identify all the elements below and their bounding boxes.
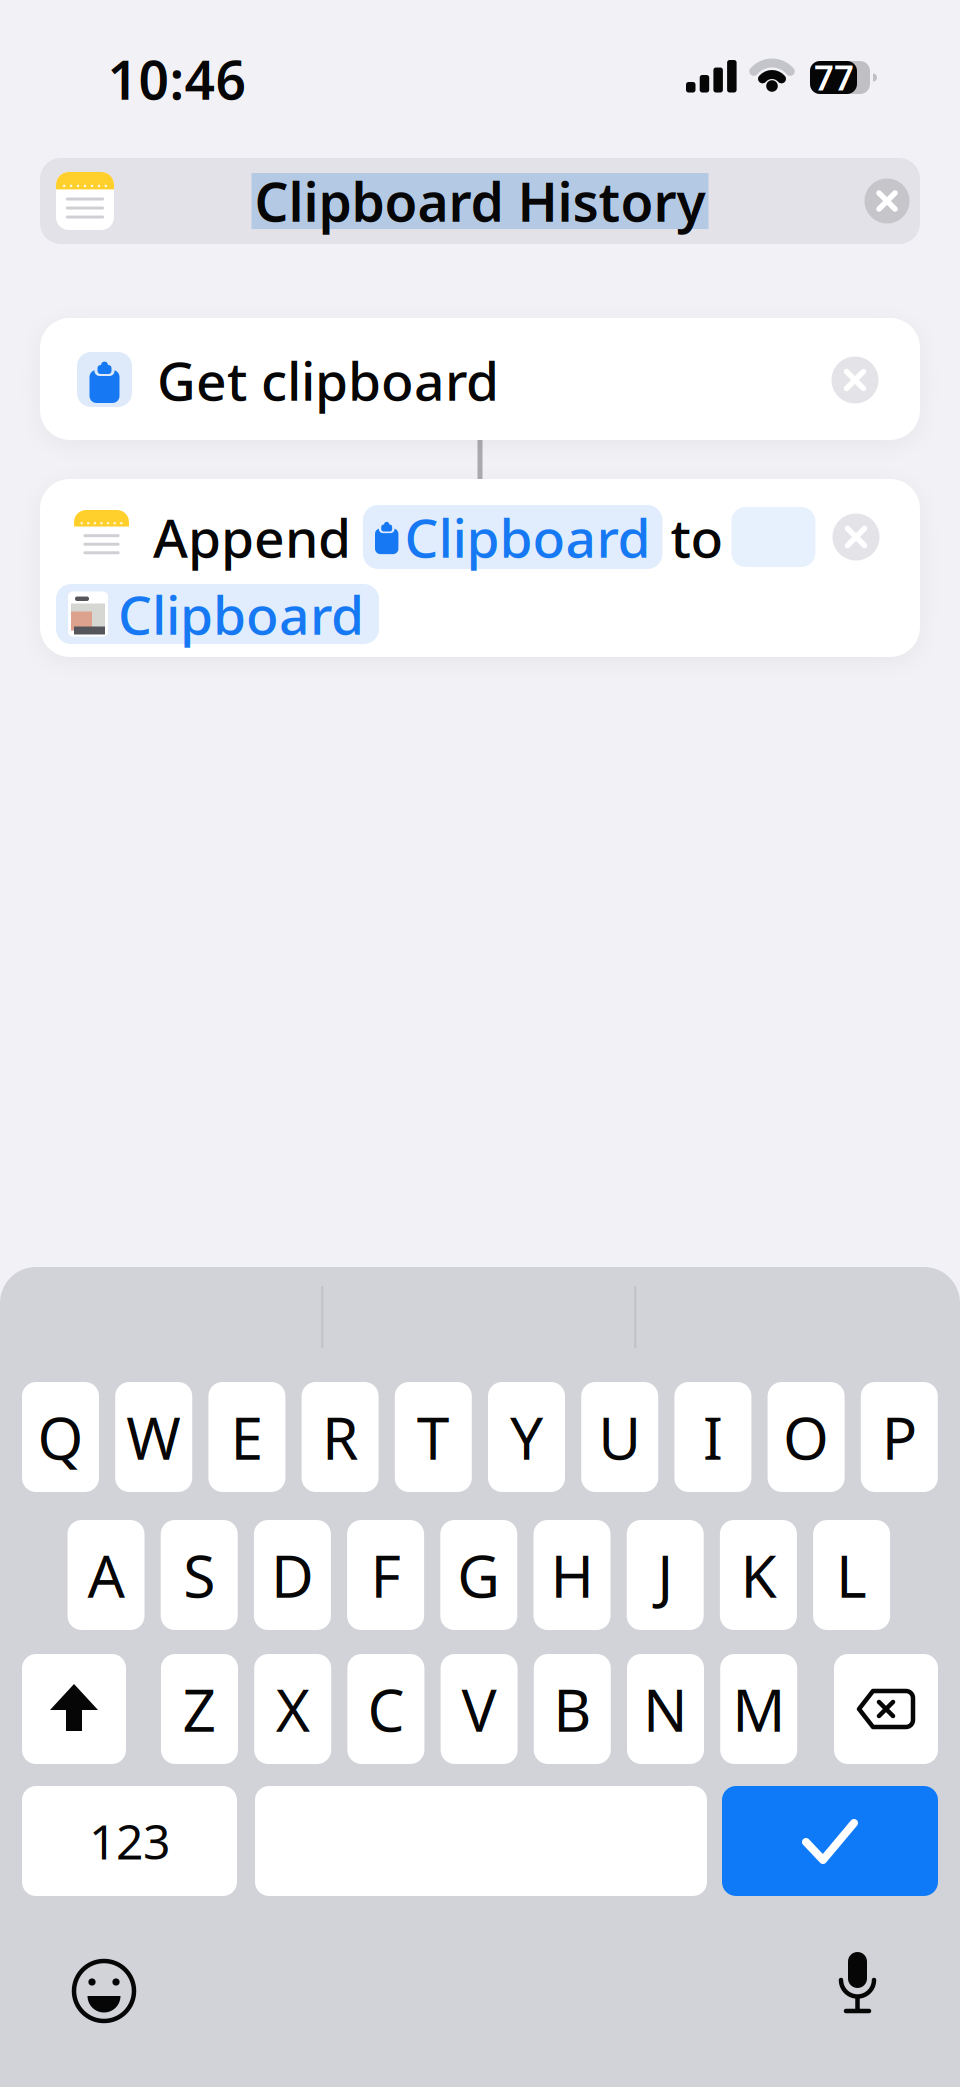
button[interactable]: V xyxy=(441,1654,518,1764)
staticText: R xyxy=(322,1398,358,1476)
staticText: Get clipboard xyxy=(157,345,499,415)
button[interactable]: M xyxy=(720,1654,797,1764)
staticText: E xyxy=(230,1398,263,1476)
button[interactable]: U xyxy=(581,1382,658,1492)
staticText: Q xyxy=(37,1398,83,1476)
staticText: 77 xyxy=(814,54,854,100)
staticText: Z xyxy=(182,1670,216,1748)
staticText: D xyxy=(271,1536,314,1614)
staticText: Clipboard xyxy=(404,502,650,572)
staticText: Clipboard xyxy=(118,579,364,649)
button[interactable]: Dictation xyxy=(820,1950,896,2026)
staticText: B xyxy=(553,1670,591,1748)
button[interactable]: H xyxy=(533,1520,610,1630)
button[interactable]: D xyxy=(254,1520,331,1630)
button[interactable]: P xyxy=(861,1382,938,1492)
button[interactable]: Remove Get clipboard xyxy=(831,356,878,403)
button[interactable]: F xyxy=(347,1520,424,1630)
button[interactable]: Remove Append action xyxy=(832,513,879,560)
button[interactable]: T xyxy=(395,1382,472,1492)
staticText: Y xyxy=(510,1398,543,1476)
staticText: C xyxy=(367,1670,404,1748)
button[interactable]: B xyxy=(534,1654,611,1764)
button[interactable]: Get clipboard action xyxy=(40,318,920,440)
button[interactable]: S xyxy=(161,1520,238,1630)
button[interactable]: Q xyxy=(22,1382,99,1492)
button[interactable]: E xyxy=(208,1382,285,1492)
staticText: X xyxy=(276,1670,310,1748)
staticText: S xyxy=(183,1536,215,1614)
button[interactable]: Y xyxy=(488,1382,565,1492)
staticText: L xyxy=(836,1536,867,1614)
button[interactable]: Append to note action xyxy=(40,479,920,657)
staticText: P xyxy=(882,1398,917,1476)
button[interactable]: K xyxy=(720,1520,797,1630)
button[interactable]: Return xyxy=(722,1786,938,1896)
button[interactable]: G xyxy=(440,1520,517,1630)
button[interactable]: Note field xyxy=(731,507,815,567)
staticText: N xyxy=(643,1670,688,1748)
staticText: 10:46 xyxy=(107,44,246,114)
button[interactable]: L xyxy=(813,1520,890,1630)
button[interactable]: W xyxy=(115,1382,192,1492)
button[interactable]: N xyxy=(627,1654,704,1764)
staticText: 123 xyxy=(89,1809,170,1873)
button[interactable]: Z xyxy=(161,1654,238,1764)
staticText: J xyxy=(657,1536,673,1614)
staticText: F xyxy=(371,1536,401,1614)
staticText: K xyxy=(740,1536,776,1614)
button[interactable]: X xyxy=(254,1654,331,1764)
staticText: V xyxy=(462,1670,497,1748)
button[interactable]: Emoji xyxy=(66,1953,142,2029)
button[interactable]: I xyxy=(674,1382,751,1492)
staticText: T xyxy=(417,1398,450,1476)
button[interactable]: Clear Title xyxy=(864,178,909,223)
button[interactable]: J xyxy=(627,1520,704,1630)
button[interactable]: R xyxy=(302,1382,379,1492)
staticText: O xyxy=(783,1398,829,1476)
staticText: I xyxy=(703,1398,723,1476)
staticText: G xyxy=(457,1536,500,1614)
staticText: to xyxy=(670,502,723,572)
staticText: Clipboard History xyxy=(254,166,705,236)
staticText: Append xyxy=(153,502,351,572)
button[interactable]: Delete xyxy=(834,1654,938,1764)
button[interactable]: 123 xyxy=(22,1786,237,1896)
button[interactable]: Shortcut Name xyxy=(40,158,920,244)
staticText: M xyxy=(732,1670,785,1748)
staticText: W xyxy=(126,1398,181,1476)
button[interactable]: A xyxy=(67,1520,144,1630)
button[interactable]: Shift xyxy=(22,1654,126,1764)
button[interactable]: Clipboard variable xyxy=(363,505,662,569)
staticText: A xyxy=(87,1536,124,1614)
staticText: U xyxy=(598,1398,641,1476)
button[interactable]: Clipboard variable value xyxy=(56,584,379,644)
button[interactable]: C xyxy=(347,1654,424,1764)
staticText: H xyxy=(550,1536,593,1614)
button[interactable]: O xyxy=(768,1382,845,1492)
button[interactable]: Choose Icon xyxy=(54,170,116,232)
